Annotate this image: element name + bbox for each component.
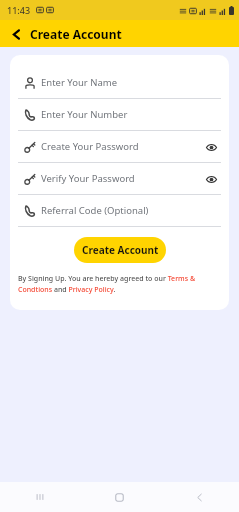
staticText: Create Account (82, 243, 159, 257)
button[interactable]: Home (79, 482, 159, 512)
button[interactable]: Verify Your Password (18, 163, 221, 194)
button[interactable]: Show password (201, 137, 221, 157)
button[interactable]: Referral Code (Optional) (18, 195, 221, 226)
staticText: Referral Code (Optional) (41, 204, 217, 217)
staticText: 11:43 (7, 4, 31, 16)
staticText: Enter Your Name (41, 76, 217, 89)
button[interactable]: Show password (201, 169, 221, 189)
button[interactable]: Create Your Password (18, 131, 221, 162)
staticText: Enter Your Number (41, 108, 217, 121)
button[interactable]: Recent apps (0, 482, 79, 512)
button[interactable]: Enter Your Number (18, 99, 221, 130)
staticText: Create Account (30, 26, 122, 42)
button[interactable]: Enter Your Name (18, 67, 221, 98)
staticText: Create Your Password (41, 140, 201, 153)
staticText: Verify Your Password (41, 172, 201, 185)
button[interactable]: Back (6, 24, 26, 44)
button[interactable]: By Signing Up. You are hereby agreed to … (18, 274, 221, 294)
button[interactable]: Create Account (74, 237, 166, 263)
